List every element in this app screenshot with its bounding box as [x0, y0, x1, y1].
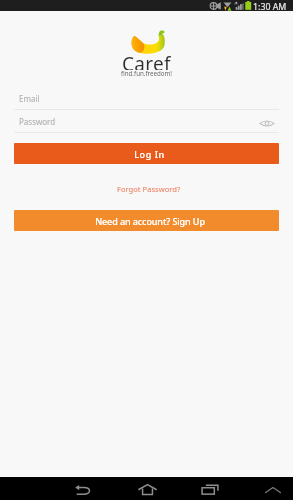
- button[interactable]: Password: [14, 112, 279, 133]
- button[interactable]: Show password: [259, 115, 275, 131]
- button[interactable]: Recent apps: [196, 478, 224, 500]
- button[interactable]: Email: [14, 89, 279, 110]
- staticText: Log In: [134, 148, 165, 160]
- staticText: Caref: [122, 51, 171, 70]
- staticText: Need an account? Sign Up: [95, 215, 205, 227]
- button[interactable]: Log In: [14, 143, 279, 164]
- button[interactable]: Home: [133, 478, 161, 500]
- staticText: find.fun.freedom!: [121, 69, 172, 77]
- staticText: 1:30 AM: [253, 1, 287, 12]
- button[interactable]: Back: [69, 478, 97, 500]
- staticText: Forgot Password?: [117, 184, 181, 194]
- button[interactable]: Forgot Password?: [111, 181, 187, 197]
- button[interactable]: Show navigation: [261, 478, 285, 500]
- staticText: Email: [19, 93, 40, 104]
- button[interactable]: Need an account? Sign Up: [14, 210, 279, 231]
- staticText: Password: [19, 116, 56, 127]
